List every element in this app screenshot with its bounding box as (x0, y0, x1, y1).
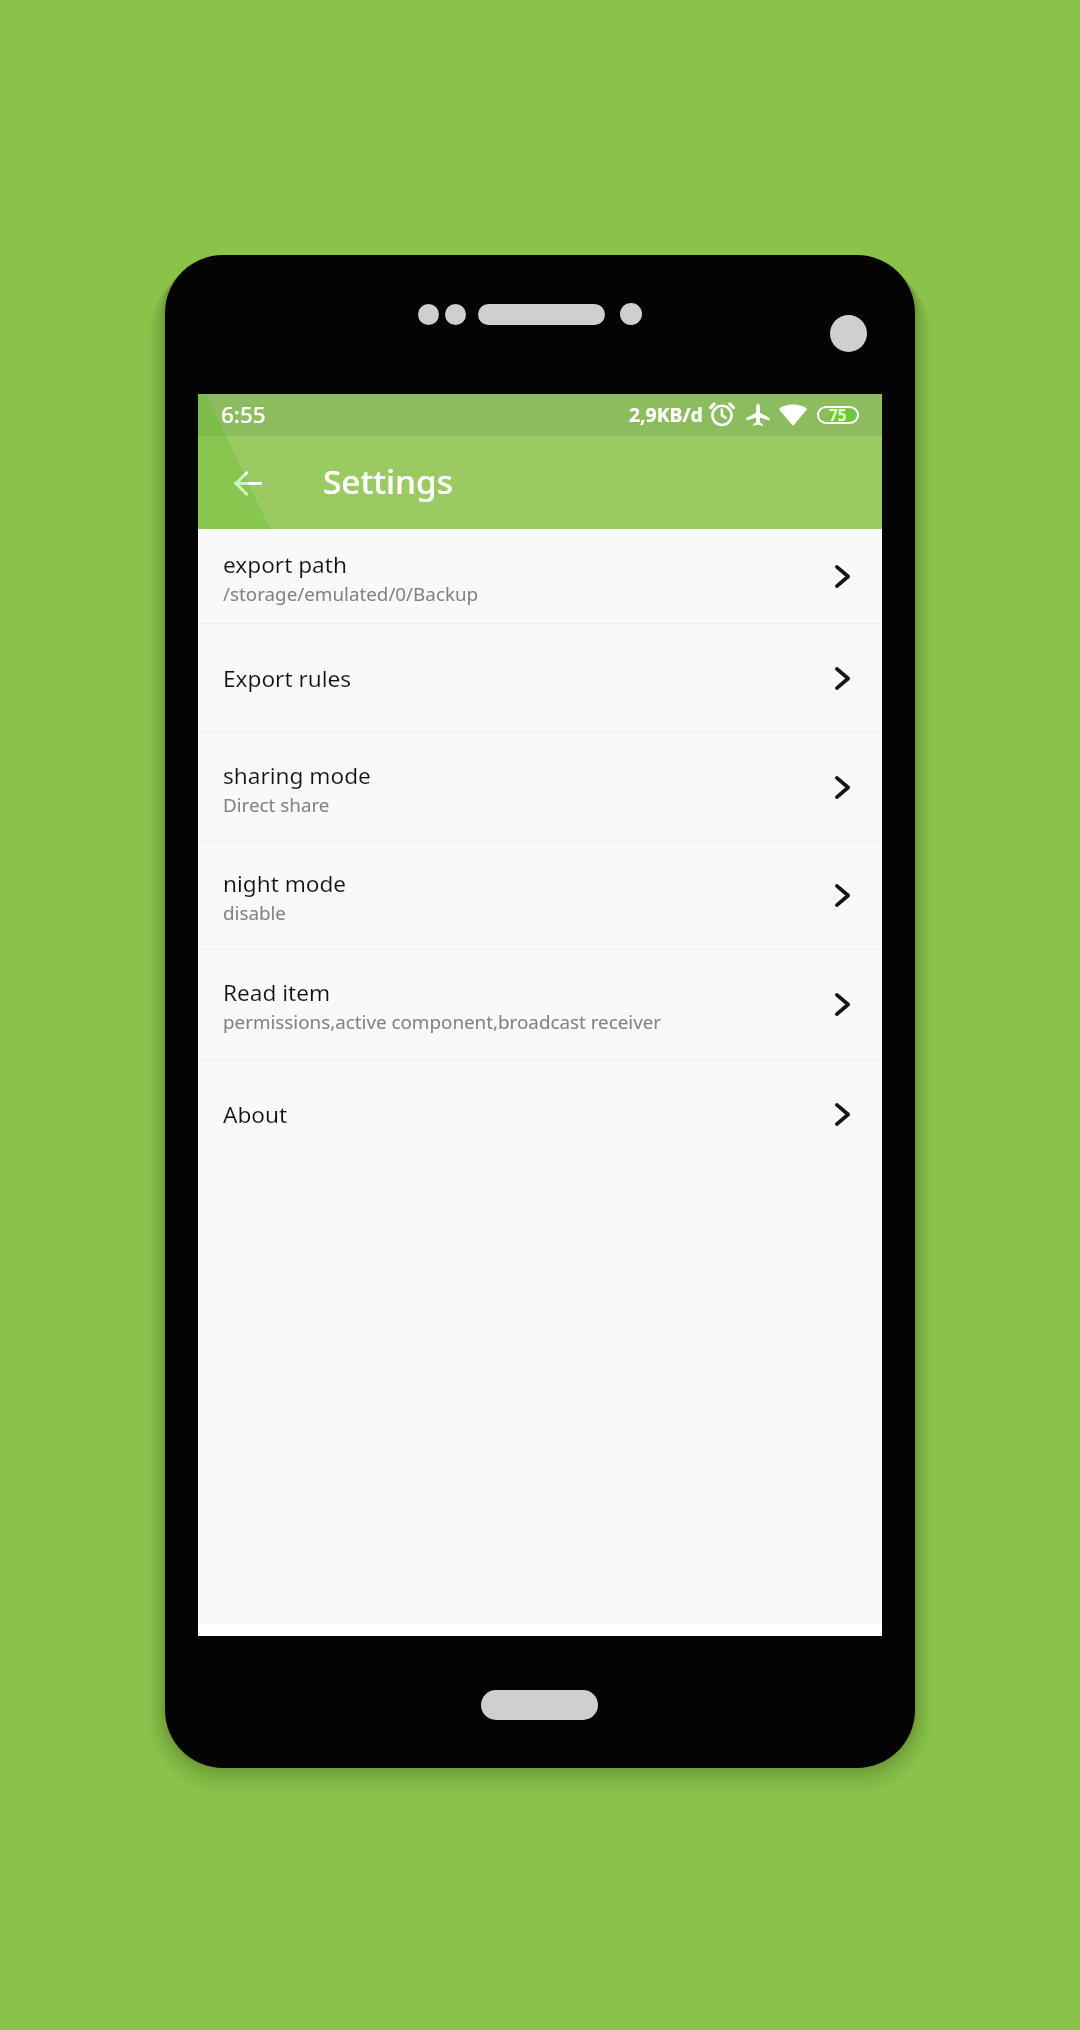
button[interactable]: About (198, 1060, 882, 1168)
button[interactable]: sharing mode (198, 733, 882, 841)
staticText: Read item (223, 977, 331, 1008)
staticText: Direct share (223, 792, 330, 818)
staticText: Export rules (223, 663, 352, 694)
staticText: 6:55 (221, 399, 266, 430)
button[interactable]: Back (219, 454, 277, 512)
button[interactable]: Read item (198, 950, 882, 1059)
button[interactable]: night mode (198, 842, 882, 949)
staticText: Settings (323, 458, 453, 503)
staticText: sharing mode (223, 760, 371, 791)
staticText: night mode (223, 868, 347, 899)
staticText: 2,9KB/d (629, 401, 703, 427)
staticText: /storage/emulated/0/Backup (223, 581, 479, 607)
staticText: disable (223, 900, 286, 926)
staticText: permissions,active component,broadcast r… (223, 1009, 662, 1035)
button[interactable]: Export rules (198, 624, 882, 732)
button[interactable]: export path (198, 529, 882, 623)
staticText: About (223, 1099, 288, 1130)
staticText: 75 (829, 404, 847, 425)
staticText: export path (223, 549, 347, 580)
